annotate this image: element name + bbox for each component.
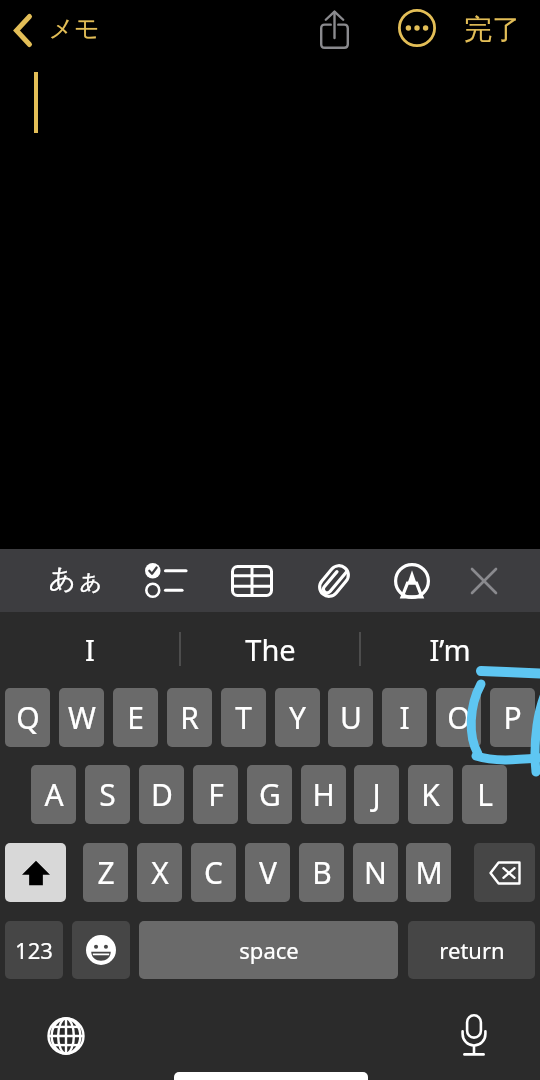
button[interactable]: C bbox=[191, 843, 236, 902]
button[interactable]: Y bbox=[275, 688, 320, 747]
button[interactable]: Attach bbox=[308, 549, 360, 612]
button[interactable]: V bbox=[245, 843, 290, 902]
button[interactable]: L bbox=[462, 765, 507, 824]
button[interactable]: Dictation bbox=[452, 1013, 496, 1057]
button[interactable]: The bbox=[180, 612, 360, 686]
staticText: D bbox=[151, 774, 173, 815]
staticText: U bbox=[340, 697, 362, 738]
button[interactable] bbox=[5, 843, 66, 902]
button[interactable]: I bbox=[382, 688, 427, 747]
button[interactable]: S bbox=[85, 765, 130, 824]
staticText: space bbox=[239, 935, 299, 965]
staticText: Q bbox=[16, 697, 40, 738]
staticText: W bbox=[68, 697, 96, 738]
staticText: H bbox=[312, 774, 335, 815]
button[interactable]: Share bbox=[312, 1, 356, 57]
staticText: 完了 bbox=[464, 12, 520, 47]
button[interactable] bbox=[474, 843, 535, 902]
button[interactable]: X bbox=[137, 843, 182, 902]
staticText: T bbox=[235, 697, 252, 738]
button[interactable]: B bbox=[299, 843, 344, 902]
button[interactable]: Checklist bbox=[139, 549, 191, 612]
staticText: P bbox=[503, 697, 522, 738]
staticText: N bbox=[364, 852, 387, 893]
staticText: K bbox=[421, 774, 440, 815]
staticText: E bbox=[127, 697, 144, 738]
button[interactable]: メモ bbox=[14, 0, 100, 56]
staticText: I bbox=[85, 630, 95, 669]
button[interactable]: 123 bbox=[5, 921, 63, 979]
button[interactable]: 完了 bbox=[455, 1, 529, 57]
staticText: O bbox=[447, 697, 471, 738]
button[interactable] bbox=[72, 921, 130, 979]
button[interactable]: N bbox=[353, 843, 398, 902]
button[interactable]: More bbox=[395, 0, 439, 56]
staticText: I bbox=[399, 697, 410, 738]
button[interactable]: E bbox=[113, 688, 158, 747]
button[interactable]: I bbox=[0, 612, 180, 686]
button[interactable]: K bbox=[408, 765, 453, 824]
staticText: B bbox=[312, 852, 332, 893]
staticText: R bbox=[180, 697, 199, 738]
button[interactable]: F bbox=[193, 765, 238, 824]
staticText: Z bbox=[97, 852, 115, 893]
staticText: S bbox=[99, 774, 116, 815]
button[interactable]: W bbox=[59, 688, 104, 747]
staticText: あぁ bbox=[48, 562, 104, 596]
button[interactable]: Close bbox=[458, 549, 510, 612]
button[interactable]: Q bbox=[5, 688, 50, 747]
button[interactable]: T bbox=[221, 688, 266, 747]
staticText: 123 bbox=[15, 935, 53, 965]
staticText: The bbox=[245, 630, 296, 669]
staticText: Y bbox=[289, 697, 306, 738]
button[interactable]: P bbox=[490, 688, 535, 747]
staticText: C bbox=[204, 852, 223, 893]
button[interactable]: M bbox=[406, 843, 451, 902]
button[interactable]: J bbox=[354, 765, 399, 824]
staticText: L bbox=[477, 774, 493, 815]
staticText: return bbox=[439, 935, 505, 965]
button[interactable]: あぁ bbox=[41, 547, 111, 610]
button[interactable]: space bbox=[139, 921, 398, 979]
button[interactable]: Next keyboard bbox=[44, 1014, 88, 1058]
staticText: G bbox=[259, 774, 281, 815]
staticText: F bbox=[208, 774, 224, 815]
button[interactable]: return bbox=[408, 921, 535, 979]
button[interactable]: I’m bbox=[360, 612, 540, 686]
staticText: I’m bbox=[429, 630, 471, 669]
staticText: V bbox=[259, 852, 277, 893]
button[interactable]: H bbox=[301, 765, 346, 824]
button[interactable]: R bbox=[167, 688, 212, 747]
button[interactable]: G bbox=[247, 765, 292, 824]
button[interactable]: D bbox=[139, 765, 184, 824]
staticText: メモ bbox=[48, 13, 100, 44]
staticText: J bbox=[372, 774, 381, 815]
button[interactable]: A bbox=[31, 765, 76, 824]
button[interactable]: Table bbox=[226, 549, 278, 612]
button[interactable]: U bbox=[328, 688, 373, 747]
staticText: A bbox=[44, 774, 64, 815]
button[interactable]: Z bbox=[83, 843, 128, 902]
button[interactable]: O bbox=[436, 688, 481, 747]
button[interactable]: Markup bbox=[386, 549, 438, 612]
staticText: M bbox=[415, 852, 443, 893]
staticText: X bbox=[151, 852, 169, 893]
